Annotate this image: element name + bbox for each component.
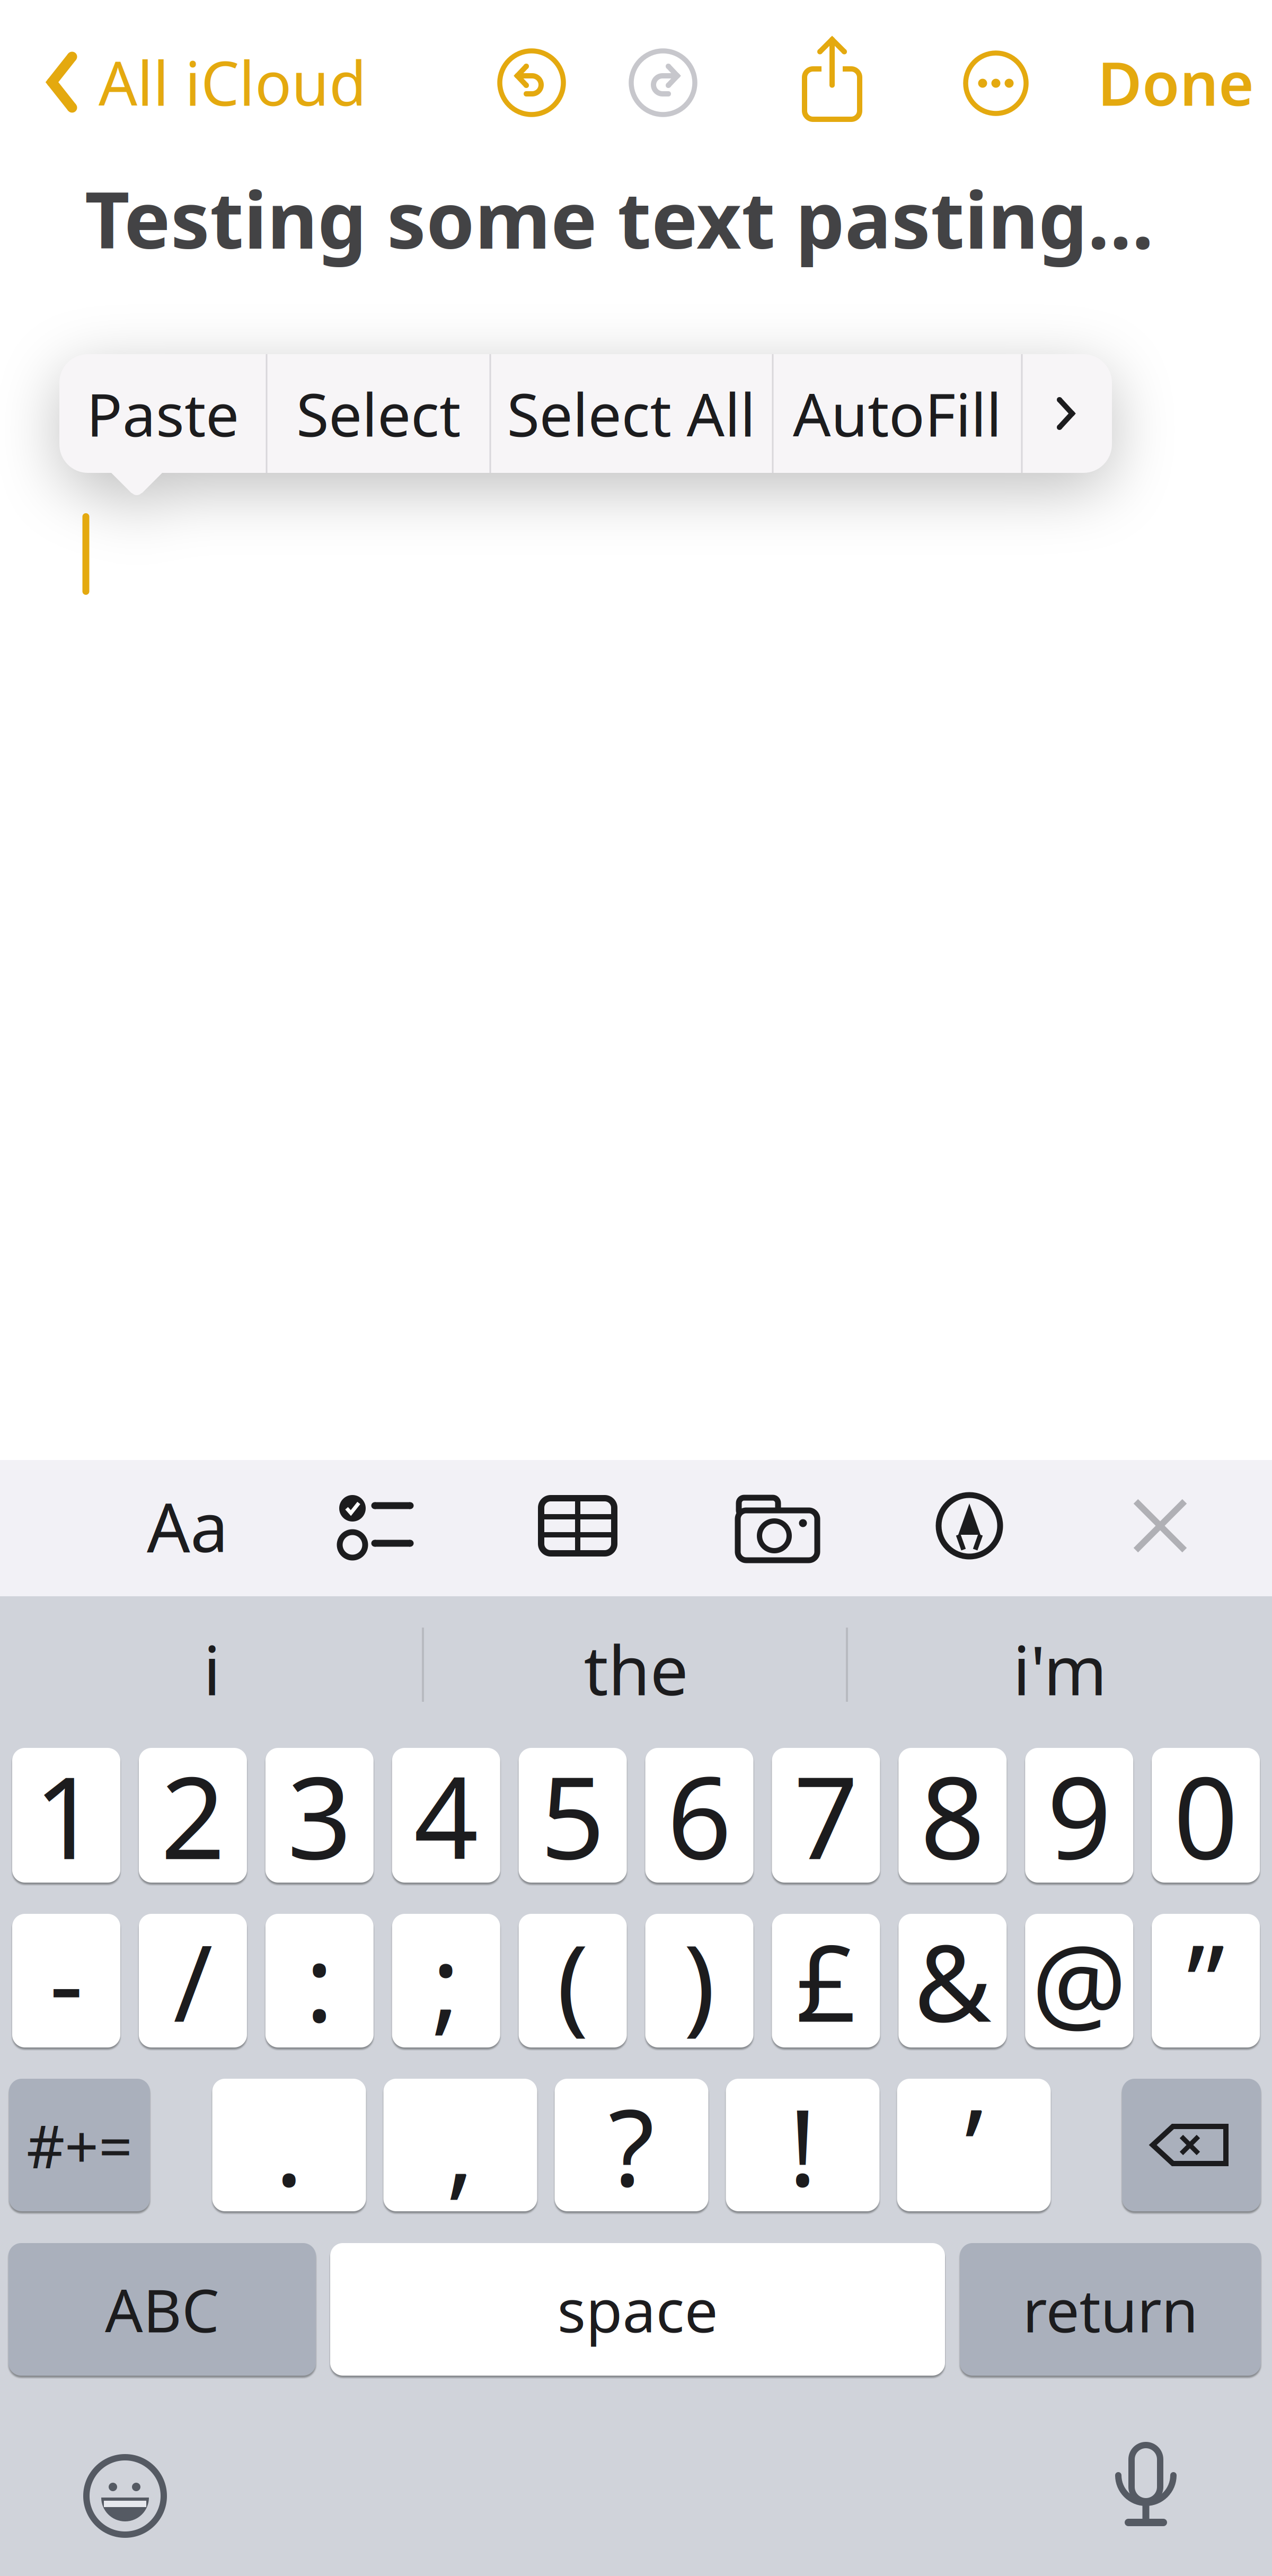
button[interactable]: 3 [265,1748,374,1883]
button[interactable]: Camera [725,1475,831,1576]
staticText: 7 [794,1740,858,1890]
button[interactable]: & [899,1914,1007,2047]
button[interactable]: ” [1152,1914,1260,2047]
button[interactable]: Undo [499,50,564,116]
button[interactable]: Format [129,1473,246,1579]
staticText: Done [1098,42,1254,123]
button[interactable]: ; [392,1914,500,2047]
staticText: - [49,1910,83,2051]
button[interactable]: the [429,1597,843,1740]
staticText: ’ [965,2075,983,2215]
button[interactable]: / [139,1914,247,2047]
button[interactable]: 4 [392,1748,500,1883]
staticText: 8 [920,1740,985,1890]
button[interactable]: More [966,53,1026,113]
button[interactable]: Markup [919,1475,1020,1576]
staticText: Paste [86,374,239,453]
staticText: ? [608,2075,655,2215]
button[interactable]: 6 [645,1748,753,1883]
button[interactable]: AutoFill [775,354,1019,473]
button[interactable]: . [212,2079,366,2211]
staticText: Select All [507,374,756,453]
staticText: 0 [1173,1740,1238,1890]
staticText: ( [557,1910,589,2051]
button[interactable]: 7 [772,1748,880,1883]
staticText: ; [432,1910,460,2051]
staticText: ” [1187,1910,1225,2051]
button[interactable]: ’ [897,2079,1051,2211]
button[interactable]: Table [527,1475,628,1576]
button[interactable]: return [960,2243,1261,2376]
button[interactable]: 0 [1152,1748,1260,1883]
button[interactable]: 2 [139,1748,247,1883]
button[interactable]: Checklist [327,1475,428,1576]
staticText: / [173,1910,212,2051]
button[interactable]: 5 [519,1748,627,1883]
button[interactable]: Dictation [1112,2447,1181,2542]
staticText: 6 [667,1740,732,1890]
staticText: @ [1031,1910,1127,2051]
staticText: , [446,2075,475,2215]
button[interactable]: Share [805,38,860,119]
staticText: i'm [1013,1624,1107,1714]
button[interactable]: - [12,1914,120,2047]
staticText: All iCloud [99,42,367,123]
button[interactable]: Delete [1122,2079,1261,2211]
staticText: #+= [26,2106,132,2184]
button[interactable]: : [265,1914,374,2047]
button[interactable]: Select All [493,354,769,473]
staticText: 9 [1047,1740,1112,1890]
button[interactable]: ABC [8,2243,316,2376]
staticText: 3 [287,1740,352,1890]
staticText: 5 [540,1740,605,1890]
button[interactable]: Done [1098,42,1254,123]
button[interactable]: Emoji [80,2451,170,2541]
staticText: ) [683,1910,715,2051]
staticText: Aa [147,1481,228,1571]
button[interactable]: , [383,2079,537,2211]
staticText: . [275,2075,303,2215]
staticText: i [203,1624,221,1714]
button[interactable]: i'm [853,1597,1267,1740]
button[interactable]: @ [1025,1914,1133,2047]
staticText: 4 [414,1740,478,1890]
staticText: Testing some text pasting… [85,167,1154,270]
button[interactable]: 8 [899,1748,1007,1883]
button[interactable]: Dismiss keyboard tools [1118,1483,1203,1568]
staticText: the [584,1624,688,1714]
button[interactable]: #+= [9,2079,150,2211]
staticText: ! [788,2075,817,2215]
button[interactable]: All iCloud [47,42,367,123]
button[interactable]: ) [645,1914,753,2047]
staticText: 1 [34,1740,99,1890]
staticText: £ [796,1910,856,2051]
button[interactable]: £ [772,1914,880,2047]
staticText: & [914,1910,991,2051]
staticText: space [557,2270,718,2349]
button[interactable]: Select [270,354,487,473]
button[interactable]: space [330,2243,945,2376]
button[interactable]: Paste [62,354,263,473]
button[interactable]: ? [555,2079,708,2211]
button[interactable]: 1 [12,1748,120,1883]
button[interactable]: ( [519,1914,627,2047]
button[interactable]: More menu items [1022,354,1110,473]
button[interactable]: Redo [630,50,696,116]
staticText: : [305,1910,334,2051]
staticText: ABC [105,2270,219,2349]
staticText: AutoFill [793,374,1002,453]
staticText: Select [296,374,461,453]
button[interactable]: ! [726,2079,880,2211]
staticText: return [1023,2270,1198,2349]
button[interactable]: i [5,1597,419,1740]
button[interactable]: 9 [1025,1748,1133,1883]
staticText: 2 [161,1740,225,1890]
